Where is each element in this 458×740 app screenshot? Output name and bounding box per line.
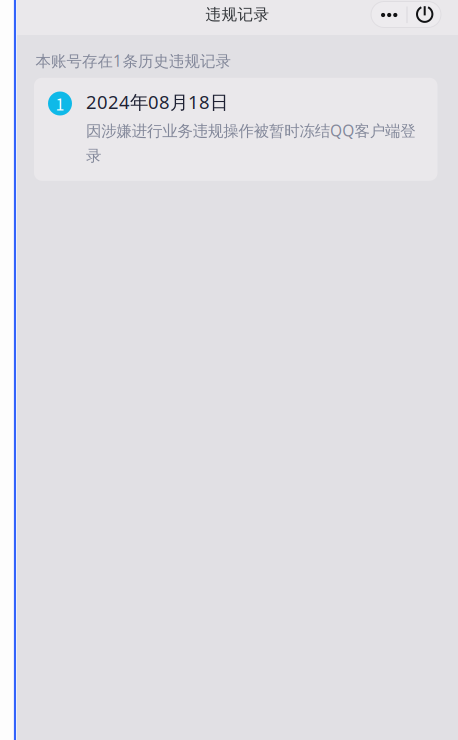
staticText: 违规记录 xyxy=(205,5,269,24)
button[interactable]: 1 xyxy=(34,78,437,181)
staticText: 2024年08月18日 xyxy=(86,89,228,114)
staticText: 本账号存在1条历史违规记录 xyxy=(35,50,230,71)
staticText: 1 xyxy=(55,92,64,115)
staticText: 因涉嫌进行业务违规操作被暂时冻结QQ客户端登录 xyxy=(86,120,415,165)
button[interactable]: More options xyxy=(371,1,406,27)
button[interactable]: Close xyxy=(407,1,442,27)
